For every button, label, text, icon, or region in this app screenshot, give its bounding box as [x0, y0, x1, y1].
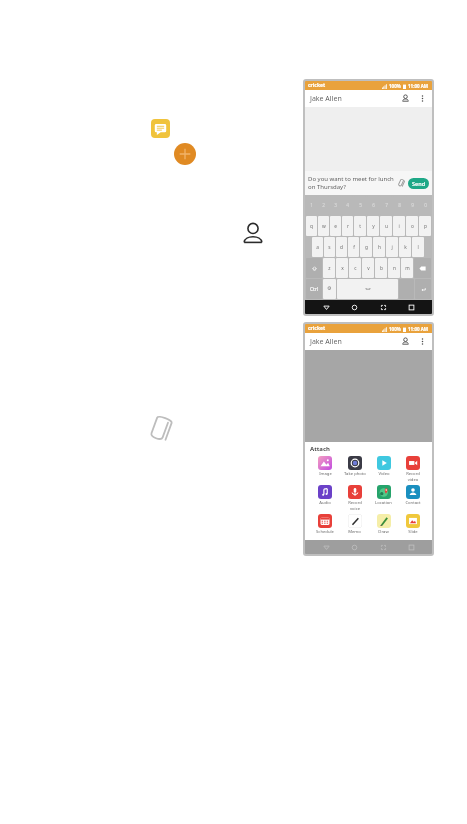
button[interactable] — [415, 279, 431, 299]
button[interactable]: Recents — [404, 540, 418, 554]
button[interactable]: Contact details — [400, 93, 411, 104]
button[interactable]: Ctrl — [306, 279, 322, 299]
button[interactable]: r — [342, 216, 353, 236]
staticText: 5 — [359, 202, 362, 209]
button[interactable]: q — [306, 216, 317, 236]
button[interactable] — [306, 258, 322, 278]
staticText: Jake Allen — [310, 337, 342, 347]
button[interactable]: Image — [310, 456, 340, 477]
button[interactable]: Menu — [376, 540, 390, 554]
button[interactable]: g — [360, 237, 372, 257]
staticText: ⚙ — [327, 286, 332, 292]
staticText: e — [334, 223, 337, 230]
button[interactable]: Schedule — [310, 514, 340, 535]
staticText: Image — [319, 471, 332, 477]
staticText: p — [424, 223, 427, 230]
button[interactable]: j — [386, 237, 398, 257]
button[interactable]: f — [348, 237, 359, 257]
button[interactable]: Take photo — [340, 456, 369, 477]
button[interactable]: s — [324, 237, 335, 257]
button[interactable]: Messages — [151, 119, 170, 138]
button[interactable]: 9 — [406, 196, 418, 215]
button[interactable]: Contact — [398, 485, 427, 506]
button[interactable] — [337, 279, 398, 299]
button[interactable]: o — [406, 216, 418, 236]
button[interactable]: m — [401, 258, 413, 278]
button[interactable]: 8 — [393, 196, 405, 215]
button[interactable]: t — [354, 216, 366, 236]
button[interactable]: Back — [319, 540, 333, 554]
button[interactable]: Home — [347, 540, 361, 554]
button[interactable]: Video — [369, 456, 398, 477]
staticText: 2 — [322, 202, 325, 209]
button[interactable]: e — [330, 216, 341, 236]
button[interactable]: Contact details — [400, 336, 411, 347]
button[interactable]: y — [367, 216, 379, 236]
button[interactable]: h — [373, 237, 385, 257]
button[interactable]: More options — [417, 336, 428, 347]
button[interactable]: Audio — [310, 485, 340, 506]
button[interactable]: 4 — [342, 196, 353, 215]
staticText: Record video — [406, 471, 420, 482]
button[interactable]: Send — [408, 178, 429, 189]
staticText: b — [380, 265, 383, 272]
button[interactable]: 6 — [367, 196, 379, 215]
button[interactable]: k — [399, 237, 411, 257]
staticText: a — [316, 244, 319, 251]
button[interactable]: d — [336, 237, 347, 257]
button[interactable]: 5 — [354, 196, 366, 215]
button[interactable]: Contact — [240, 220, 266, 248]
button[interactable]: Attach — [150, 416, 172, 442]
button[interactable]: Back — [319, 300, 333, 314]
button[interactable]: 3 — [330, 196, 341, 215]
staticText: m — [405, 265, 410, 272]
staticText: 1 — [310, 202, 313, 209]
staticText: 100% — [389, 83, 401, 89]
button[interactable]: More options — [417, 93, 428, 104]
button[interactable]: Recents — [404, 300, 418, 314]
button[interactable]: i — [393, 216, 405, 236]
staticText: Jake Allen — [310, 94, 342, 104]
button[interactable]: v — [362, 258, 374, 278]
button[interactable]: a — [312, 237, 323, 257]
button[interactable]: 0 — [419, 196, 431, 215]
staticText: Memo — [348, 529, 361, 535]
staticText: 3 — [334, 202, 337, 209]
button[interactable]: 7 — [380, 196, 392, 215]
button[interactable]: Record voice — [340, 485, 369, 511]
button[interactable]: Attach — [396, 178, 406, 188]
staticText: Audio — [319, 500, 331, 506]
button[interactable]: w — [318, 216, 329, 236]
button[interactable]: p — [419, 216, 431, 236]
button[interactable]: Record video — [398, 456, 427, 482]
staticText: s — [328, 244, 331, 251]
button[interactable]: u — [380, 216, 392, 236]
button[interactable]: Draw — [369, 514, 398, 535]
button[interactable]: n — [388, 258, 400, 278]
button[interactable]: Slide — [398, 514, 427, 535]
button[interactable]: x — [336, 258, 348, 278]
button[interactable]: b — [375, 258, 387, 278]
button[interactable]: Location — [369, 485, 398, 506]
staticText: 100% — [389, 326, 401, 332]
button[interactable]: ⚙ — [323, 279, 336, 299]
button[interactable]: z — [323, 258, 335, 278]
staticText: 9 — [411, 202, 414, 209]
button[interactable]: Memo — [340, 514, 369, 535]
staticText: cricket — [308, 82, 326, 89]
staticText: q — [310, 223, 313, 230]
button[interactable]: Menu — [376, 300, 390, 314]
staticText: l — [417, 244, 419, 251]
staticText: Send — [412, 180, 426, 187]
staticText: g — [365, 244, 368, 251]
button[interactable]: Home — [347, 300, 361, 314]
staticText: 7 — [385, 202, 388, 209]
button[interactable]: New message — [174, 143, 196, 165]
button[interactable]: l — [412, 237, 424, 257]
staticText: Record voice — [348, 500, 362, 511]
button[interactable]: 2 — [318, 196, 329, 215]
button[interactable]: c — [349, 258, 361, 278]
button[interactable] — [414, 258, 431, 278]
